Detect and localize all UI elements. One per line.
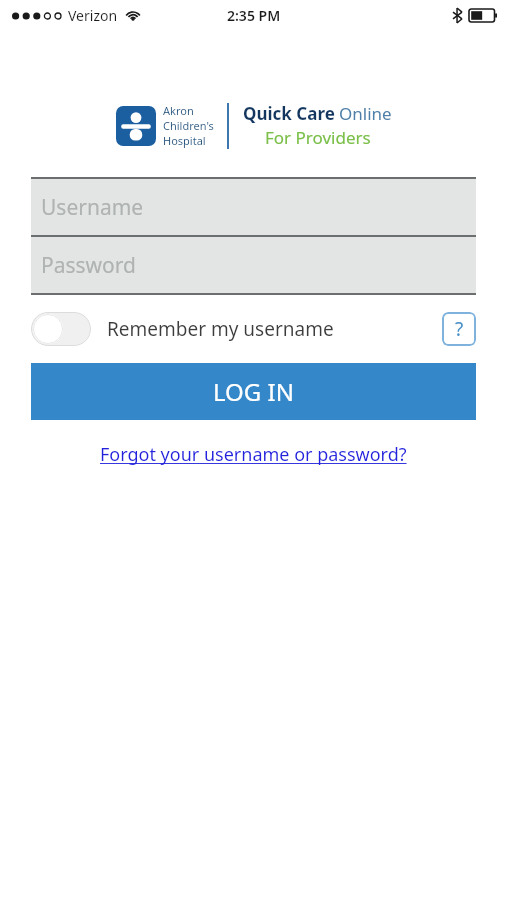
button[interactable]: Help	[442, 312, 476, 346]
staticText: Akron	[163, 103, 194, 118]
button[interactable]: LOG IN	[31, 363, 476, 420]
staticText: Forgot your username or password?	[100, 442, 407, 467]
staticText: Quick Care	[243, 102, 335, 125]
staticText: For Providers	[265, 126, 371, 149]
button[interactable]: Password	[31, 237, 476, 293]
staticText: Remember my username	[107, 316, 334, 342]
staticText: Password	[41, 251, 136, 280]
staticText: Verizon	[68, 6, 118, 25]
staticText: Online	[339, 102, 392, 125]
staticText: 2:35 PM	[227, 6, 281, 25]
staticText: Username	[41, 193, 144, 222]
button[interactable]: Forgot your username or password?	[94, 440, 413, 469]
staticText: LOG IN	[213, 375, 294, 408]
staticText: Children's	[163, 118, 214, 133]
button[interactable]: Remember my username toggle	[31, 312, 91, 346]
staticText: ?	[455, 316, 464, 342]
staticText: Hospital	[163, 133, 206, 148]
button[interactable]: Username	[31, 179, 476, 235]
